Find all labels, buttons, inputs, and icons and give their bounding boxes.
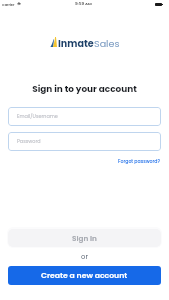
button[interactable]: Email/Username bbox=[8, 107, 161, 126]
button[interactable]: Sign In bbox=[8, 229, 161, 247]
staticText: Carrier bbox=[2, 2, 15, 7]
staticText: Sign In bbox=[72, 233, 97, 243]
staticText: Inmate bbox=[58, 37, 94, 50]
staticText: Create a new account bbox=[41, 270, 128, 281]
other: Wi-Fi bbox=[17, 2, 21, 6]
staticText: Sign in to your account bbox=[0, 83, 169, 95]
staticText: or bbox=[0, 252, 169, 262]
staticText: 9:59 AM bbox=[75, 1, 92, 7]
button[interactable]: Forgot password? bbox=[118, 158, 169, 165]
staticText: Password bbox=[17, 138, 41, 145]
staticText: Forgot password? bbox=[118, 158, 161, 165]
button[interactable]: Create a new account bbox=[8, 266, 161, 285]
button[interactable]: Password bbox=[8, 132, 161, 151]
staticText: Email/Username bbox=[17, 113, 58, 120]
staticText: Sales bbox=[94, 37, 120, 50]
